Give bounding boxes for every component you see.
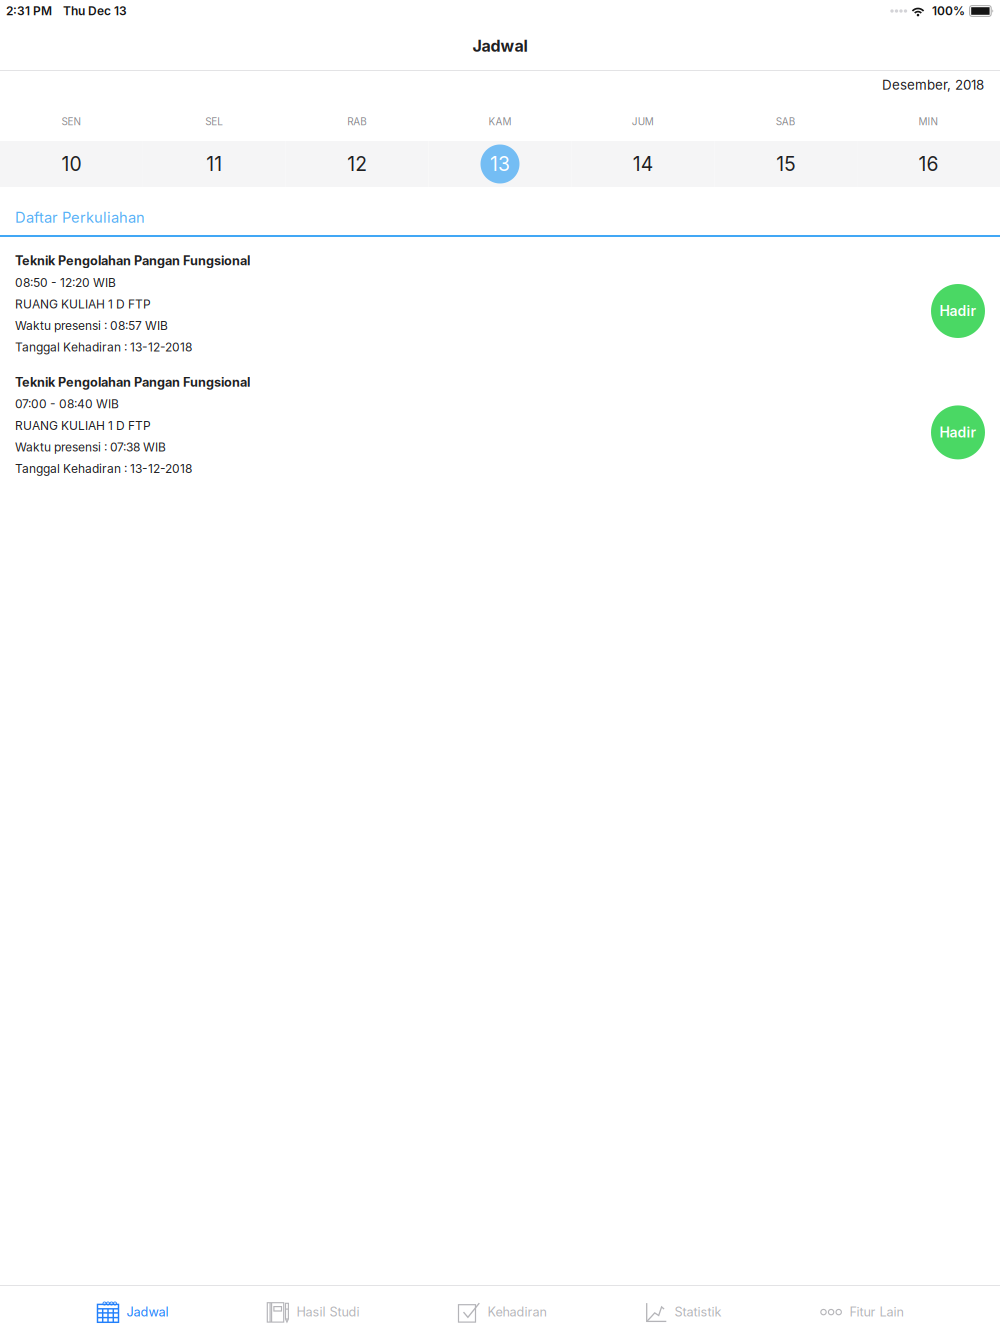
staticText: 08:50 - 12:20 WIB: [15, 275, 116, 290]
staticText: 16: [919, 152, 939, 176]
button[interactable]: SAB: [714, 107, 857, 187]
staticText: SAB: [776, 115, 796, 128]
staticText: RUANG KULIAH 1 D FTP: [15, 418, 151, 433]
staticText: 2:31 PM: [6, 4, 52, 18]
staticText: Hadir: [939, 302, 976, 319]
staticText: Statistik: [674, 1304, 721, 1320]
staticText: RAB: [347, 115, 367, 128]
button[interactable]: Statistik: [595, 1286, 770, 1334]
button[interactable]: Hasil Studi: [217, 1286, 408, 1334]
staticText: Waktu presensi : 07:38 WIB: [15, 440, 166, 454]
staticText: RUANG KULIAH 1 D FTP: [15, 297, 151, 311]
staticText: 13: [490, 152, 510, 176]
staticText: Teknik Pengolahan Pangan Fungsional: [15, 253, 250, 268]
button[interactable]: MIN: [857, 107, 1000, 187]
staticText: 100%: [932, 4, 965, 18]
staticText: KAM: [488, 115, 511, 128]
staticText: 12: [347, 152, 367, 176]
button[interactable]: SEL: [143, 107, 286, 187]
staticText: 14: [633, 152, 653, 176]
staticText: 07:00 - 08:40 WIB: [15, 397, 119, 411]
staticText: Fitur Lain: [849, 1304, 903, 1320]
button[interactable]: RAB: [286, 107, 429, 187]
staticText: Tanggal Kehadiran : 13-12-2018: [15, 461, 192, 476]
staticText: Hadir: [939, 424, 976, 441]
button[interactable]: JUM: [571, 107, 714, 187]
button[interactable]: Jadwal: [47, 1286, 217, 1334]
staticText: 11: [206, 152, 222, 176]
staticText: MIN: [919, 115, 939, 128]
button[interactable]: SEN: [0, 107, 143, 187]
staticText: SEL: [205, 115, 223, 128]
staticText: Jadwal: [472, 36, 527, 56]
staticText: Jadwal: [126, 1304, 168, 1320]
staticText: Teknik Pengolahan Pangan Fungsional: [15, 374, 250, 390]
button[interactable]: KAM: [429, 107, 571, 187]
button[interactable]: Teknik Pengolahan Pangan Fungsional: [0, 374, 1000, 476]
staticText: SEN: [61, 115, 81, 128]
button[interactable]: Kehadiran: [408, 1286, 595, 1334]
button[interactable]: Teknik Pengolahan Pangan Fungsional: [0, 253, 1000, 354]
staticText: Daftar Perkuliahan: [15, 209, 145, 226]
staticText: Tanggal Kehadiran : 13-12-2018: [15, 340, 192, 354]
staticText: Thu Dec 13: [63, 4, 127, 18]
staticText: Hasil Studi: [296, 1304, 359, 1320]
staticText: 15: [776, 152, 795, 176]
staticText: 10: [61, 152, 81, 176]
staticText: Desember, 2018: [882, 77, 984, 93]
button[interactable]: Fitur Lain: [770, 1286, 952, 1334]
staticText: Waktu presensi : 08:57 WIB: [15, 318, 168, 333]
staticText: Kehadiran: [487, 1304, 546, 1320]
staticText: JUM: [632, 115, 654, 128]
